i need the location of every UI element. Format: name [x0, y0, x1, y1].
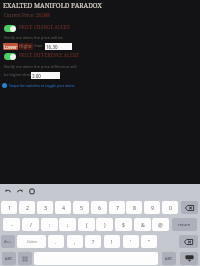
button[interactable]: 1	[1, 201, 17, 214]
staticText: :	[49, 221, 51, 228]
staticText: 6	[98, 204, 101, 211]
staticText: PRICE DIFFERENCE ALERT	[19, 52, 79, 58]
staticText: /	[30, 221, 32, 228]
button[interactable]: "	[141, 235, 157, 248]
button[interactable]: $	[115, 218, 132, 231]
button[interactable]: (	[78, 218, 95, 231]
staticText: 0	[169, 204, 172, 211]
button[interactable]: ;	[59, 218, 76, 231]
staticText: Lower	[4, 44, 17, 50]
button[interactable]: ABC	[162, 252, 176, 265]
staticText: 16,30	[46, 44, 58, 50]
staticText: 3	[44, 204, 47, 211]
staticText: than	[34, 43, 43, 48]
staticText: Higher	[19, 43, 33, 50]
staticText: 4	[62, 204, 65, 211]
staticText: return	[178, 222, 191, 228]
staticText: 26,088	[36, 12, 50, 18]
button[interactable]: 3	[37, 201, 53, 214]
staticText: ,	[74, 238, 76, 245]
button[interactable]: 8	[126, 201, 142, 214]
button[interactable]: Colon	[17, 235, 46, 248]
button[interactable]: :	[41, 218, 58, 231]
button[interactable]: .	[48, 235, 64, 248]
staticText: 5	[80, 204, 83, 211]
button[interactable]: 0	[162, 201, 178, 214]
button[interactable]: 9	[144, 201, 160, 214]
staticText: '	[130, 238, 132, 245]
button[interactable]: 4	[55, 201, 71, 214]
staticText: 8	[133, 204, 136, 211]
staticText: &	[141, 221, 145, 228]
button[interactable]: 7	[109, 201, 125, 214]
button[interactable]: @	[152, 218, 169, 231]
staticText: be higher than	[4, 72, 32, 77]
button[interactable]: -	[3, 218, 20, 231]
button[interactable]: Higher	[19, 43, 33, 50]
button[interactable]: Undo	[4, 187, 12, 195]
button[interactable]: Backspace	[181, 201, 198, 214]
staticText: 3.00	[32, 73, 41, 79]
button[interactable]: #+=	[1, 235, 15, 248]
button[interactable]: return	[172, 218, 197, 231]
staticText: (	[86, 221, 88, 228]
button[interactable]: 2	[19, 201, 35, 214]
button[interactable]: Backspace	[179, 235, 198, 248]
staticText: )	[104, 221, 106, 228]
staticText: Notify me when the price will be	[4, 35, 63, 40]
staticText: Swipe the switches to toggle your alerts	[9, 83, 75, 88]
button[interactable]: Redo	[16, 187, 24, 195]
button[interactable]: ,	[67, 235, 83, 248]
staticText: ABC	[5, 256, 13, 261]
staticText: 2	[26, 204, 29, 211]
button[interactable]: Toggle alert	[4, 53, 16, 60]
staticText: ?	[92, 238, 95, 245]
button[interactable]: !	[104, 235, 120, 248]
button[interactable]: ABC	[2, 252, 16, 265]
button[interactable]: 5	[73, 201, 89, 214]
staticText: PRICE CHANGE ALERT	[19, 24, 70, 30]
staticText: ABC	[165, 256, 173, 261]
button[interactable]: Switch keyboard	[18, 252, 32, 265]
staticText: !	[111, 238, 113, 245]
staticText: #+=	[4, 239, 12, 245]
staticText: ;	[67, 221, 69, 228]
button[interactable]: /	[22, 218, 39, 231]
button[interactable]: 6	[91, 201, 107, 214]
button[interactable]: )	[96, 218, 113, 231]
staticText: @	[158, 221, 163, 228]
button[interactable]: Paste	[28, 187, 36, 195]
button[interactable]: ?	[85, 235, 101, 248]
staticText: 7	[116, 204, 119, 211]
staticText: Colon	[27, 239, 37, 244]
staticText: -	[11, 221, 13, 228]
staticText: .	[55, 238, 57, 245]
staticText: Notify me when the price difference will	[4, 64, 77, 69]
button[interactable]: '	[123, 235, 139, 248]
button[interactable]: Hide keyboard	[180, 252, 198, 265]
staticText: 9	[151, 204, 154, 211]
staticText: Current Price:	[4, 12, 36, 18]
button[interactable]: Toggle alert	[4, 25, 16, 32]
button[interactable]: Lower	[3, 43, 18, 50]
staticText: EXALTED MANIFOLD PARADOX	[3, 1, 102, 10]
staticText: "	[148, 238, 151, 245]
staticText: 1	[8, 204, 11, 211]
button[interactable]: &	[134, 218, 151, 231]
button[interactable]: 16,30	[45, 43, 72, 50]
button[interactable]: 3.00	[31, 72, 60, 79]
staticText: $	[122, 221, 125, 228]
